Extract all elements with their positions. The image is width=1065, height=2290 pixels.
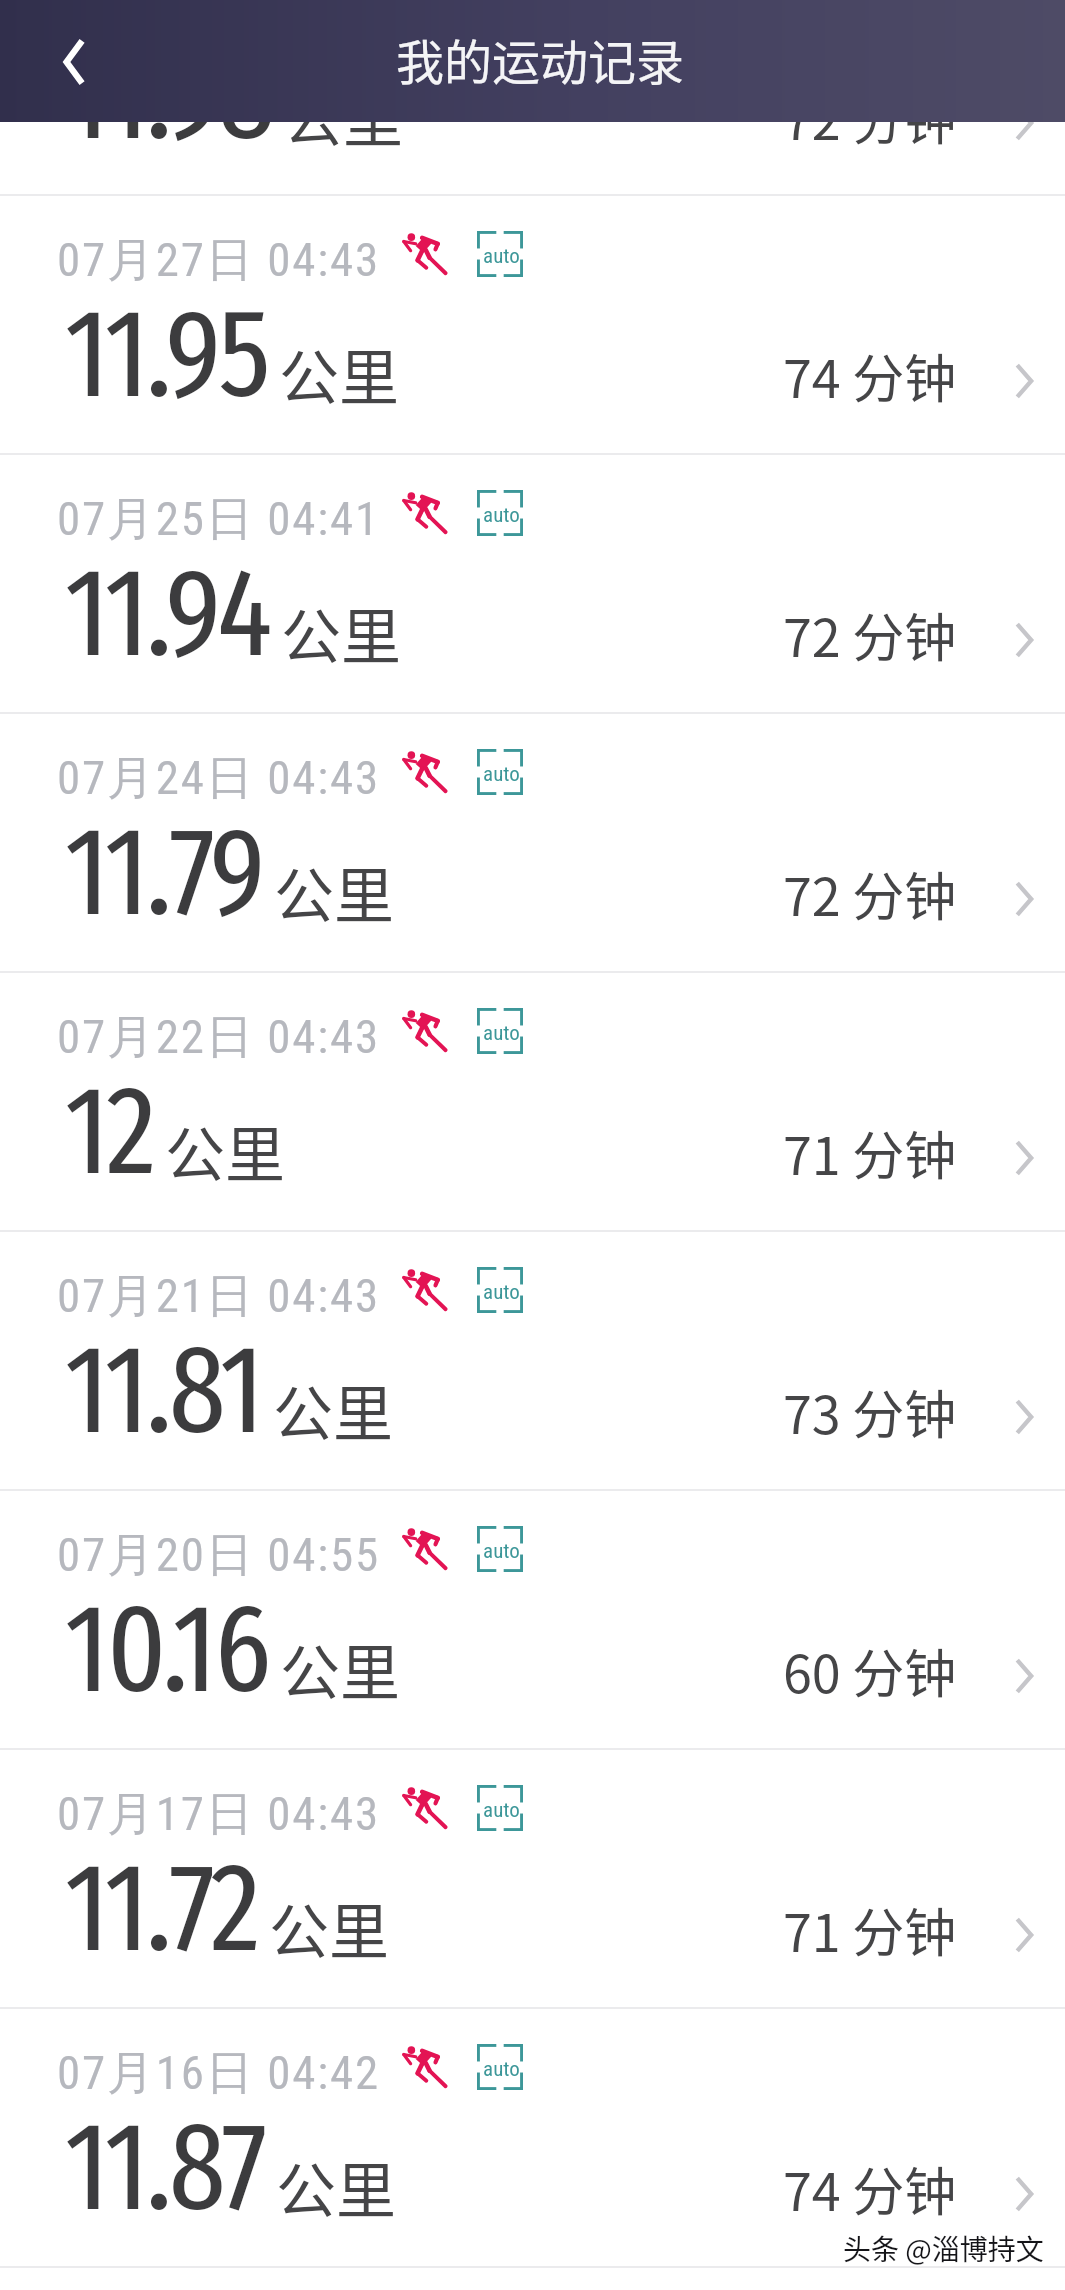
staticText: 公里 xyxy=(273,1366,393,1453)
button[interactable]: 07月16日 04:42 xyxy=(0,2009,1065,2266)
staticText: 11.72 xyxy=(65,1834,258,1983)
button[interactable]: 07月24日 04:43 xyxy=(0,714,1065,971)
staticText: 07月22日 04:43 xyxy=(57,1008,380,1067)
staticText: 公里 xyxy=(280,1625,400,1712)
staticText: 11.95 xyxy=(65,280,268,429)
staticText: 07月21日 04:43 xyxy=(57,1267,380,1326)
staticText: 公里 xyxy=(281,589,401,676)
staticText: 07月25日 04:41 xyxy=(57,490,380,549)
staticText: auto xyxy=(483,762,520,787)
staticText: 11.81 xyxy=(65,1316,262,1465)
staticText: 07月16日 04:42 xyxy=(57,2044,380,2103)
staticText: 公里 xyxy=(283,72,403,159)
button[interactable]: 07月29日 04:40 xyxy=(0,0,1065,132)
staticText: 10.16 xyxy=(65,1575,269,1724)
staticText: auto xyxy=(483,2057,520,2082)
button[interactable]: 07月27日 04:43 xyxy=(0,196,1065,453)
staticText: auto xyxy=(483,1021,520,1046)
staticText: 71 分钟 xyxy=(783,1115,957,1190)
staticText: 72 分钟 xyxy=(783,597,957,672)
staticText: auto xyxy=(483,1798,520,1823)
staticText: 公里 xyxy=(279,330,399,417)
staticText: auto xyxy=(483,503,520,528)
button[interactable]: Back xyxy=(41,25,115,99)
staticText: 我的运动记录 xyxy=(396,24,685,94)
staticText: auto xyxy=(483,244,520,269)
staticText: 公里 xyxy=(276,2143,396,2230)
staticText: 11.79 xyxy=(65,798,263,947)
staticText: 72 分钟 xyxy=(783,80,957,155)
staticText: 11.94 xyxy=(65,539,270,688)
staticText: 73 分钟 xyxy=(783,1374,957,1449)
staticText: 头条 @淄博持文 xyxy=(843,2228,1044,2269)
staticText: 07月29日 04:40 xyxy=(57,0,380,32)
staticText: auto xyxy=(483,1280,520,1305)
button[interactable]: 07月21日 04:43 xyxy=(0,1232,1065,1489)
staticText: 74 分钟 xyxy=(783,338,957,413)
staticText: 07月20日 04:55 xyxy=(57,1526,380,1585)
staticText: 12 xyxy=(65,1057,154,1206)
button[interactable]: 07月25日 04:41 xyxy=(0,455,1065,712)
staticText: 11.98 xyxy=(65,22,272,171)
button[interactable]: 07月22日 04:43 xyxy=(0,973,1065,1230)
staticText: 74 分钟 xyxy=(783,2151,957,2226)
staticText: 07月27日 04:43 xyxy=(57,231,380,290)
staticText: 72 分钟 xyxy=(783,856,957,931)
staticText: 71 分钟 xyxy=(783,1892,957,1967)
button[interactable]: 07月17日 04:43 xyxy=(0,1750,1065,2007)
staticText: 公里 xyxy=(274,848,394,935)
staticText: auto xyxy=(483,1539,520,1564)
staticText: 60 分钟 xyxy=(783,1633,957,1708)
staticText: 公里 xyxy=(269,1884,389,1971)
button[interactable]: 07月20日 04:55 xyxy=(0,1491,1065,1748)
staticText: 07月17日 04:43 xyxy=(57,1785,380,1844)
staticText: 07月24日 04:43 xyxy=(57,749,380,808)
staticText: 公里 xyxy=(165,1107,285,1194)
staticText: 11.87 xyxy=(65,2093,265,2242)
